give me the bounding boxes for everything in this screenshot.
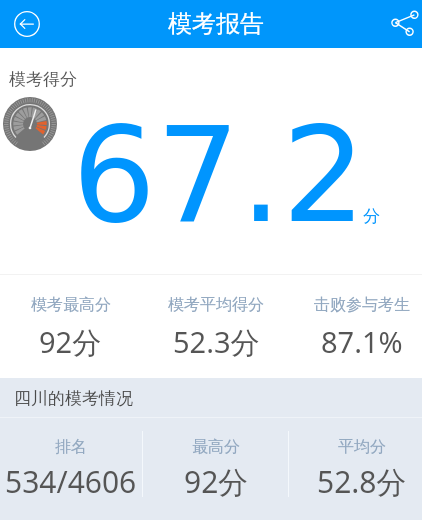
button[interactable]: Share (378, 2, 422, 46)
staticText: 52.3分 (173, 322, 260, 362)
staticText: 模考最高分 (31, 295, 111, 315)
staticText: 最高分 (192, 437, 240, 457)
staticText: 52.8分 (317, 461, 407, 502)
staticText: 分 (363, 206, 380, 227)
button[interactable]: Back (5, 2, 49, 46)
staticText: 平均分 (338, 437, 386, 457)
staticText: 87.1% (321, 322, 403, 361)
button[interactable]: 排名 (0, 418, 143, 502)
button[interactable]: 最高分 (143, 418, 289, 502)
button[interactable]: 模考平均得分 (143, 275, 289, 362)
staticText: 模考得分 (9, 69, 77, 90)
staticText: 击败参与考生 (314, 295, 410, 315)
staticText: 92分 (184, 461, 249, 502)
button[interactable]: 击败参与考生 (289, 275, 422, 361)
staticText: 四川的模考情况 (14, 388, 133, 409)
button[interactable]: 平均分 (289, 418, 422, 502)
staticText: 模考报告 (168, 9, 264, 39)
staticText: 534/4606 (5, 461, 137, 502)
staticText: 92分 (39, 322, 102, 362)
staticText: 67.2 (72, 98, 366, 252)
staticText: 排名 (55, 437, 87, 457)
button[interactable]: 模考最高分 (0, 275, 143, 362)
staticText: 模考平均得分 (168, 295, 264, 315)
